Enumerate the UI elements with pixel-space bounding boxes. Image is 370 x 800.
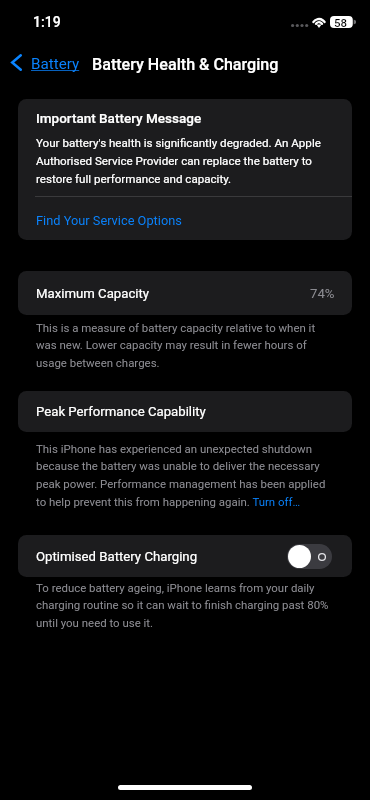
staticText: 74% xyxy=(310,286,335,301)
staticText: Battery xyxy=(31,55,80,73)
button[interactable]: Maximum Capacity xyxy=(18,271,352,315)
staticText: Peak Performance Capability xyxy=(36,404,206,419)
staticText: Find Your Service Options xyxy=(36,213,182,228)
staticText: This iPhone has experienced an unexpecte… xyxy=(36,442,326,509)
button[interactable]: Back to Battery xyxy=(6,50,86,76)
staticText: Optimised Battery Charging xyxy=(36,549,198,564)
button[interactable]: Peak Performance Capability xyxy=(18,391,352,432)
staticText: Your battery's health is significantly d… xyxy=(36,136,321,186)
staticText: This is a measure of battery capacity re… xyxy=(36,321,316,370)
staticText: Battery Health & Charging xyxy=(92,55,279,74)
staticText: 1:19 xyxy=(33,14,61,30)
staticText: 58 xyxy=(334,16,348,28)
staticText: Important Battery Message xyxy=(36,110,202,126)
button[interactable]: Find Your Service Options xyxy=(18,197,352,240)
staticText: To reduce battery ageing, iPhone learns … xyxy=(36,581,329,630)
staticText: Maximum Capacity xyxy=(36,286,150,301)
button[interactable]: Optimised Battery Charging xyxy=(287,544,332,569)
